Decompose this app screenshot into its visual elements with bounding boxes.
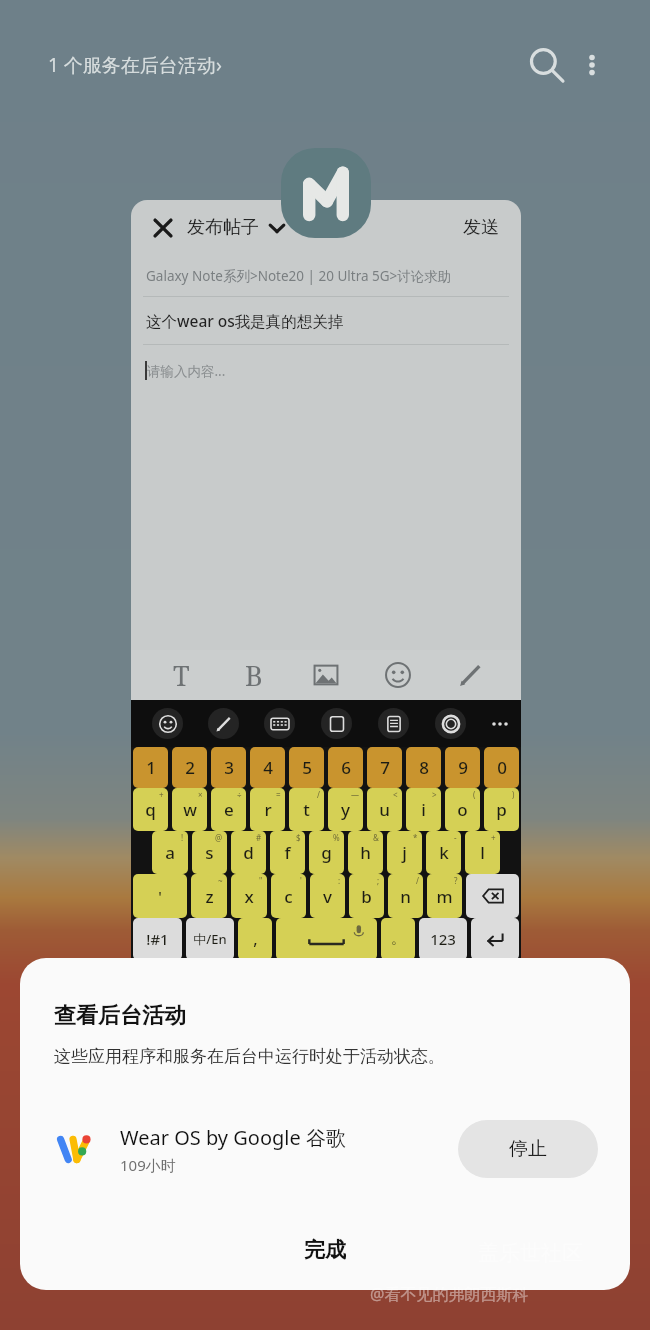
button[interactable]: p	[484, 788, 519, 831]
staticText: -	[454, 832, 457, 843]
button[interactable]: 7	[367, 747, 402, 788]
button[interactable]: r	[250, 788, 285, 831]
button[interactable]: m	[427, 874, 462, 918]
button[interactable]: 这个wear os我是真的想关掉	[131, 297, 521, 344]
button[interactable]: Clipboard	[308, 700, 365, 747]
button[interactable]: Enter	[471, 918, 519, 960]
staticText: '	[300, 875, 302, 886]
button[interactable]: u	[367, 788, 402, 831]
button[interactable]: 中/En	[186, 918, 234, 960]
button[interactable]: 8	[406, 747, 441, 788]
staticText: %	[333, 832, 340, 843]
button[interactable]: q	[133, 788, 168, 831]
staticText: o	[457, 798, 468, 821]
button[interactable]: i	[406, 788, 441, 831]
staticText: &	[373, 832, 379, 843]
button[interactable]: 6	[328, 747, 363, 788]
button[interactable]: 发送	[457, 210, 505, 245]
staticText: h	[360, 841, 371, 864]
button[interactable]: More options	[570, 43, 614, 87]
button[interactable]: a	[152, 831, 188, 874]
button[interactable]: c	[271, 874, 306, 918]
button[interactable]: w	[172, 788, 207, 831]
staticText: 4	[263, 756, 273, 779]
button[interactable]: k	[426, 831, 461, 874]
staticText: w	[183, 798, 197, 821]
staticText: ×	[198, 789, 203, 800]
button[interactable]: 完成	[20, 1220, 630, 1280]
button[interactable]: 1 个服务在后台活动	[48, 52, 222, 78]
button[interactable]: l	[465, 831, 500, 874]
button[interactable]: h	[348, 831, 383, 874]
button[interactable]: 。	[381, 918, 415, 960]
button[interactable]: 9	[445, 747, 480, 788]
button[interactable]: 123	[419, 918, 467, 960]
button[interactable]: Wear OS by Google 谷歌	[20, 1110, 630, 1188]
button[interactable]: 2	[172, 747, 207, 788]
button[interactable]: y	[328, 788, 363, 831]
button[interactable]: Close	[145, 210, 181, 246]
staticText: 发送	[463, 216, 499, 239]
button[interactable]: Insert image	[304, 653, 348, 697]
staticText: !#1	[146, 929, 169, 949]
button[interactable]: z	[191, 874, 227, 918]
button[interactable]: v	[310, 874, 345, 918]
button[interactable]: Backspace	[466, 874, 519, 918]
button[interactable]: 5	[289, 747, 324, 788]
staticText: 这些应用程序和服务在后台中运行时处于活动状态。	[54, 1046, 445, 1067]
button[interactable]: 3	[211, 747, 246, 788]
button[interactable]: g	[309, 831, 344, 874]
button[interactable]: d	[231, 831, 266, 874]
button[interactable]: Keyboard	[251, 700, 308, 747]
button[interactable]: Emoji	[376, 653, 420, 697]
staticText: T	[173, 657, 190, 694]
button[interactable]: f	[270, 831, 305, 874]
button[interactable]: ,	[238, 918, 272, 960]
button[interactable]: n	[388, 874, 423, 918]
staticText: B	[245, 657, 263, 694]
button[interactable]: B	[232, 653, 276, 697]
button[interactable]: j	[387, 831, 422, 874]
button[interactable]: 0	[484, 747, 519, 788]
button[interactable]: Draw	[449, 653, 493, 697]
staticText: <	[393, 789, 398, 800]
button[interactable]: App icon	[281, 148, 371, 238]
staticText: i	[421, 798, 426, 821]
staticText: x	[244, 885, 254, 908]
button[interactable]: !#1	[133, 918, 182, 960]
staticText: @看不见的弗朗西斯科	[370, 1283, 529, 1305]
staticText: a	[165, 841, 175, 864]
button[interactable]: e	[211, 788, 246, 831]
staticText: 这个wear os我是真的想关掉	[146, 310, 344, 331]
button[interactable]: o	[445, 788, 480, 831]
button[interactable]: Space	[276, 918, 377, 960]
button[interactable]: Settings	[422, 700, 479, 747]
button[interactable]: T	[159, 653, 203, 697]
staticText: q	[145, 798, 156, 821]
button[interactable]: 停止	[458, 1120, 598, 1178]
button[interactable]: x	[231, 874, 267, 918]
staticText: ?	[454, 875, 458, 886]
staticText: $	[296, 832, 301, 843]
button[interactable]: Handwriting	[195, 700, 251, 747]
button[interactable]: b	[349, 874, 384, 918]
staticText: )	[512, 789, 515, 800]
button[interactable]: 4	[250, 747, 285, 788]
staticText: ÷	[237, 789, 242, 800]
button[interactable]: More	[479, 700, 521, 747]
button[interactable]: 1	[133, 747, 168, 788]
button[interactable]: t	[289, 788, 324, 831]
staticText: +	[491, 832, 496, 843]
button[interactable]: Emoji	[139, 700, 195, 747]
staticText: /	[317, 789, 320, 800]
button[interactable]: Search	[524, 43, 568, 87]
staticText: 0	[497, 756, 507, 779]
button[interactable]: Notes	[365, 700, 422, 747]
button[interactable]: 发布帖子	[187, 216, 287, 239]
button[interactable]: s	[192, 831, 227, 874]
button[interactable]: '	[133, 874, 187, 918]
button[interactable]: 请输入内容...	[131, 345, 521, 395]
button[interactable]: Galaxy Note系列>Note20 | 20 Ultra 5G>讨论求助	[131, 255, 521, 296]
staticText: 停止	[509, 1137, 547, 1161]
